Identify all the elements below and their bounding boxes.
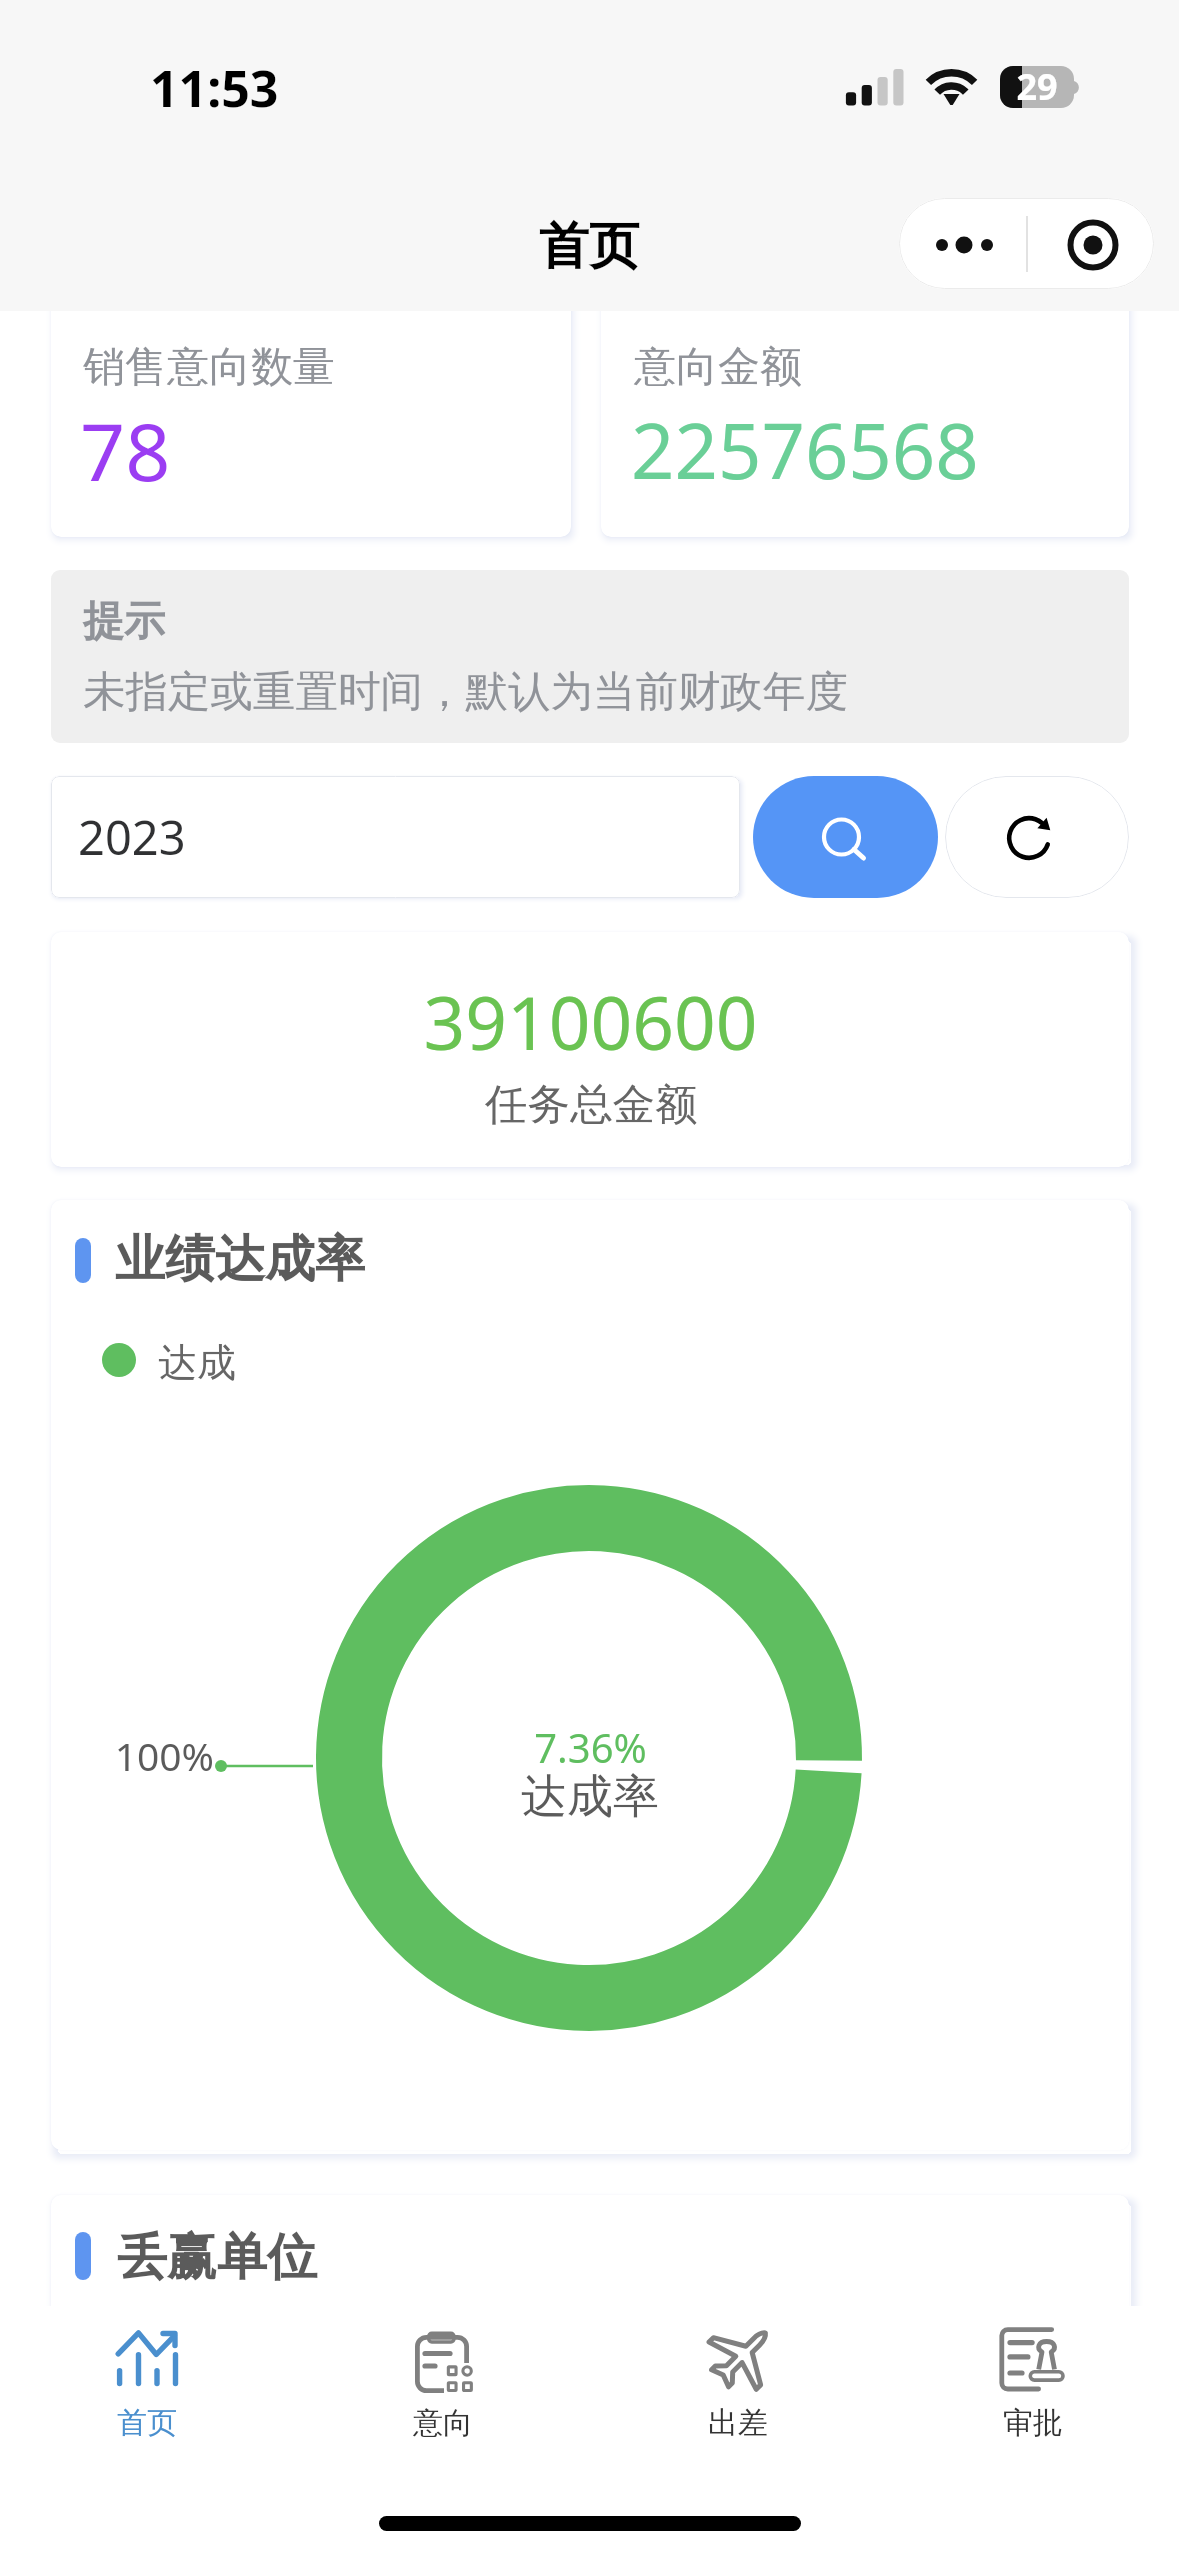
staticText: 意向 [413,2404,473,2442]
staticText: 达成率 [521,1768,659,1826]
staticText: 22576568 [631,398,979,502]
button[interactable]: 出差 [589,2306,884,2466]
button[interactable]: Search [753,776,938,898]
staticText: 首页 [539,215,639,278]
staticText: 审批 [1003,2404,1063,2442]
staticText: 销售意向数量 [83,341,335,394]
staticText: 29 [1016,62,1058,111]
button[interactable]: More options [899,198,1027,289]
staticText: 任务总金额 [485,1078,698,1132]
staticText: 2023 [78,805,186,869]
button[interactable]: 销售意向数量 [51,293,571,537]
staticText: 达成 [158,1338,236,1387]
button[interactable]: 2023 [51,776,740,898]
staticText: 11:53 [150,54,279,122]
staticText: 78 [80,397,171,505]
staticText: 提示 [83,596,165,648]
button[interactable]: Refresh [945,776,1129,898]
button[interactable]: Close mini program [1027,198,1154,289]
button[interactable]: 首页 [0,2306,294,2466]
staticText: 业绩达成率 [115,1228,365,1291]
button[interactable]: 意向金额 [601,293,1129,537]
button[interactable]: 审批 [884,2306,1179,2466]
staticText: 意向金额 [634,341,802,394]
staticText: 未指定或重置时间，默认为当前财政年度 [83,665,848,719]
staticText: 7.36% [534,1720,647,1774]
staticText: 出差 [708,2404,768,2442]
staticText: 丢赢单位 [117,2226,317,2289]
staticText: 首页 [117,2404,177,2442]
staticText: 39100600 [423,972,758,1071]
button[interactable]: 意向 [294,2306,589,2466]
staticText: 100% [114,1729,214,1782]
